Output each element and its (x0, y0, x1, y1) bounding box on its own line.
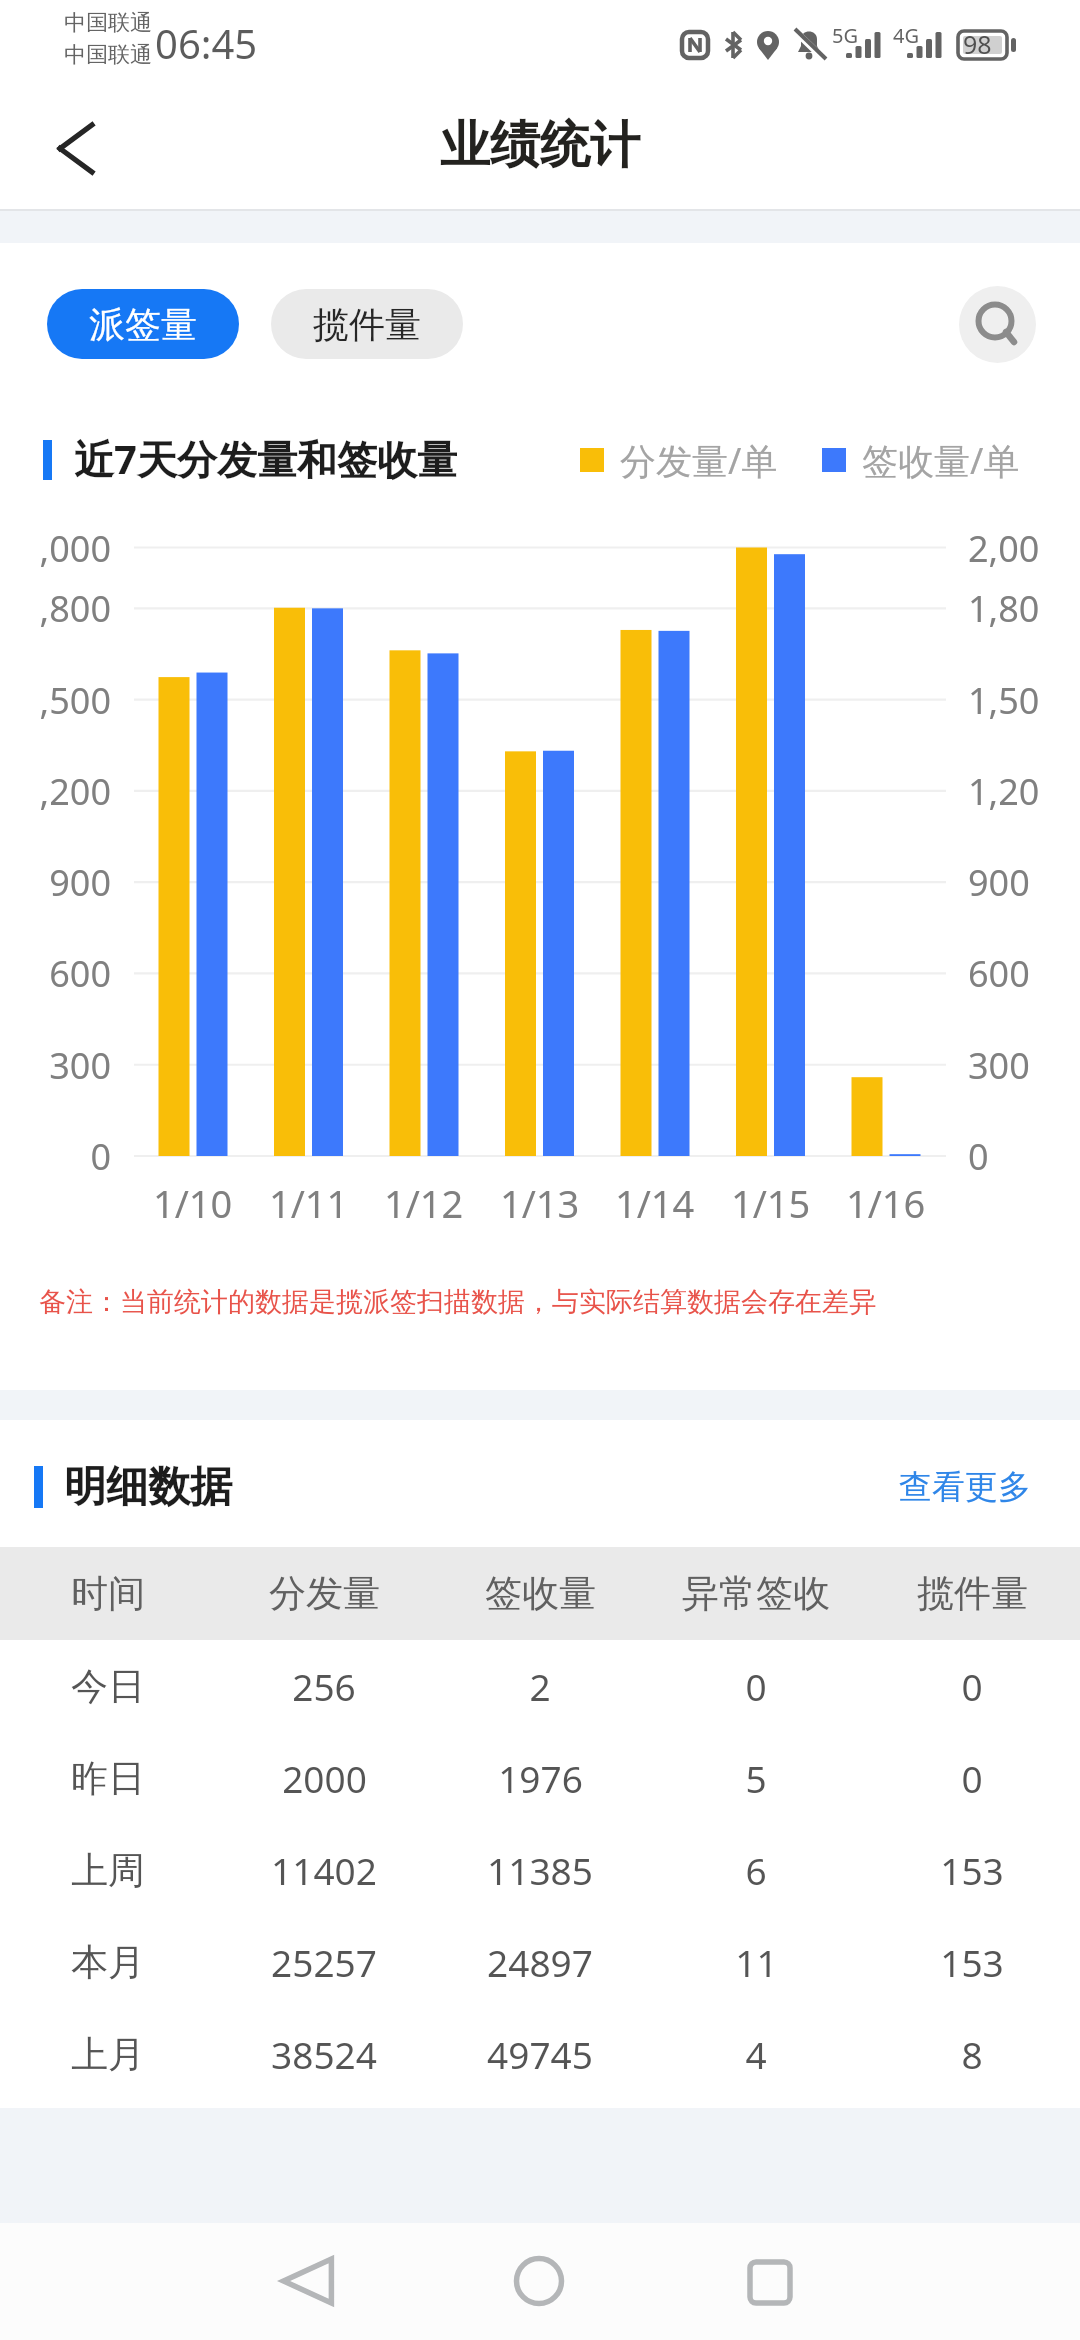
staticText: 1/16 (846, 1177, 926, 1229)
staticText: 153 (940, 1937, 1004, 1987)
staticText: 1/10 (153, 1177, 233, 1229)
staticText: 0 (961, 1753, 983, 1803)
staticText: 600 (968, 949, 1030, 998)
staticText: 900 (49, 858, 111, 907)
staticText: 38524 (271, 2029, 377, 2079)
staticText: 06:45 (155, 16, 258, 70)
button[interactable]: 上月 (0, 2008, 1080, 2100)
staticText: 揽件量 (917, 1570, 1028, 1617)
button[interactable]: 昨日 (0, 1732, 1080, 1824)
button[interactable]: 今日 (0, 1640, 1080, 1732)
staticText: ,200 (39, 767, 111, 816)
staticText: 派签量 (89, 302, 197, 347)
staticText: 11402 (271, 1845, 377, 1895)
button[interactable]: Recents (720, 2231, 820, 2331)
staticText: 4G (893, 22, 919, 49)
staticText: 中国联通 (64, 9, 152, 37)
staticText: 查看更多 (899, 1466, 1031, 1508)
staticText: 备注：当前统计的数据是揽派签扫描数据，与实际结算数据会存在差异 (39, 1285, 876, 1319)
staticText: ,500 (39, 676, 111, 725)
staticText: 1976 (498, 1753, 583, 1803)
staticText: 分发量/单 (620, 436, 778, 485)
staticText: 25257 (271, 1937, 377, 1987)
button[interactable]: Back (258, 2231, 358, 2331)
staticText: 2000 (282, 1753, 367, 1803)
staticText: 300 (968, 1041, 1030, 1090)
staticText: 1/11 (269, 1177, 349, 1229)
button[interactable]: 上周 (0, 1824, 1080, 1916)
staticText: 今日 (71, 1663, 145, 1710)
staticText: 8 (961, 2029, 983, 2079)
button[interactable]: Home (489, 2231, 589, 2331)
staticText: 1/15 (731, 1177, 811, 1229)
staticText: 24897 (487, 1937, 593, 1987)
staticText: 5 (745, 1753, 767, 1803)
staticText: 1/12 (384, 1177, 464, 1229)
staticText: 业绩统计 (440, 114, 640, 177)
staticText: 5G (832, 22, 858, 49)
button[interactable]: Search (959, 286, 1036, 363)
staticText: 中国联通 (64, 41, 152, 69)
staticText: ,800 (39, 584, 111, 633)
staticText: 上周 (71, 1847, 145, 1894)
staticText: 0 (961, 1661, 983, 1711)
staticText: 153 (940, 1845, 1004, 1895)
button[interactable]: Back (30, 104, 122, 196)
staticText: 98 (963, 27, 992, 61)
button[interactable]: 查看更多 (895, 1451, 1035, 1517)
staticText: 11385 (487, 1845, 593, 1895)
staticText: 1/14 (615, 1177, 695, 1229)
staticText: 4 (745, 2029, 767, 2079)
staticText: 11 (735, 1937, 778, 1987)
staticText: 签收量/单 (862, 436, 1020, 485)
staticText: 时间 (71, 1570, 145, 1617)
staticText: 0 (745, 1661, 767, 1711)
staticText: 49745 (487, 2029, 593, 2079)
staticText: 0 (968, 1132, 989, 1181)
staticText: 本月 (71, 1939, 145, 1986)
button[interactable]: 派签量 (47, 289, 239, 359)
button[interactable]: 本月 (0, 1916, 1080, 2008)
staticText: ,000 (39, 524, 111, 573)
staticText: 分发量 (269, 1570, 380, 1617)
staticText: 256 (292, 1661, 356, 1711)
staticText: 揽件量 (313, 302, 421, 347)
staticText: 6 (745, 1845, 767, 1895)
staticText: 1,50 (968, 676, 1040, 725)
staticText: 异常签收 (682, 1570, 830, 1617)
staticText: 900 (968, 858, 1030, 907)
staticText: 1,80 (968, 584, 1040, 633)
staticText: 昨日 (71, 1755, 145, 1802)
staticText: 300 (49, 1041, 111, 1090)
staticText: 600 (49, 949, 111, 998)
staticText: 2 (529, 1661, 551, 1711)
staticText: 1,20 (968, 767, 1040, 816)
staticText: 2,00 (968, 524, 1040, 573)
staticText: 近7天分发量和签收量 (74, 431, 457, 481)
staticText: 1/13 (500, 1177, 580, 1229)
staticText: 签收量 (485, 1570, 596, 1617)
staticText: 明细数据 (64, 1461, 232, 1514)
staticText: 0 (90, 1132, 111, 1181)
staticText: 上月 (71, 2031, 145, 2078)
button[interactable]: 揽件量 (271, 289, 463, 359)
